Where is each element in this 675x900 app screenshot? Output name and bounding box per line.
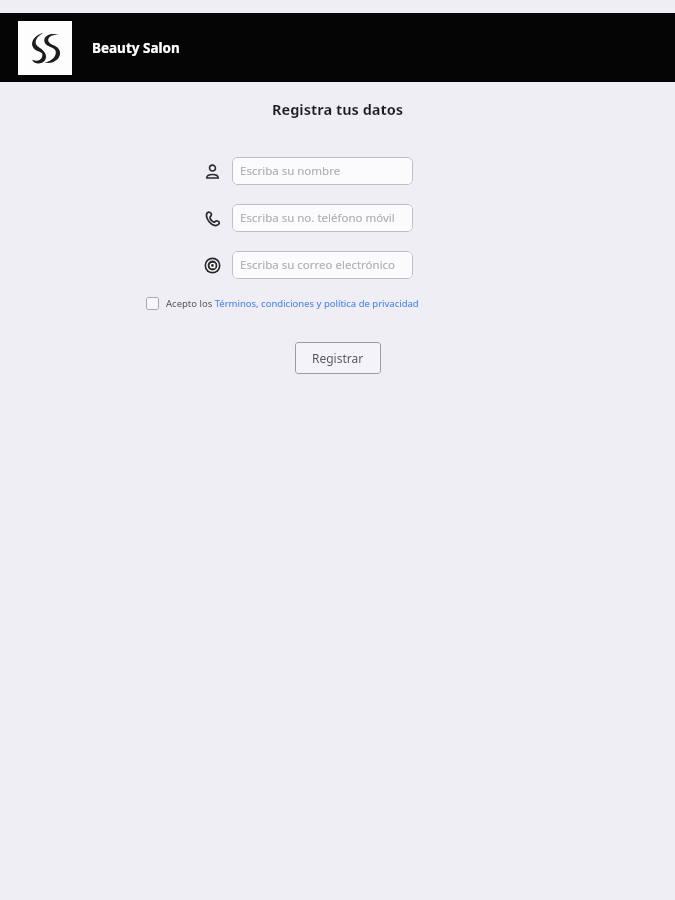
- button[interactable]: Escriba su correo electrónico: [232, 251, 413, 279]
- other: Phone: [201, 207, 223, 229]
- other: Email: [201, 254, 223, 276]
- staticText: Beauty Salon: [92, 39, 180, 57]
- staticText: Registra tus datos: [272, 99, 404, 119]
- staticText: Escriba su nombre: [240, 163, 341, 179]
- staticText: Escriba su no. teléfono móvil: [240, 210, 395, 226]
- button[interactable]: Escriba su nombre: [232, 157, 413, 185]
- button[interactable]: Registrar: [295, 342, 381, 374]
- staticText: Acepto los Términos, condiciones y polít…: [166, 297, 419, 310]
- staticText: Escriba su correo electrónico: [240, 257, 396, 273]
- staticText: Registrar: [312, 350, 364, 366]
- button[interactable]: Beauty Salon logo: [18, 21, 72, 75]
- button[interactable]: Escriba su no. teléfono móvil: [232, 204, 413, 232]
- other: Name: [201, 160, 223, 182]
- button[interactable]: Acepto los Términos, condiciones y polít…: [146, 297, 419, 310]
